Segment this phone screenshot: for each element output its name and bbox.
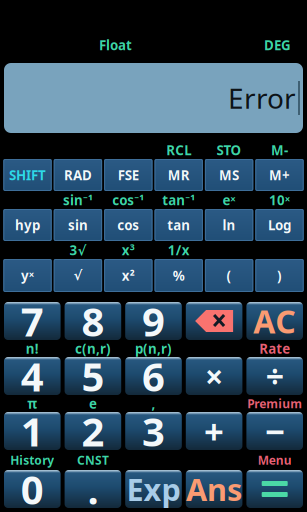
button[interactable]: sin — [54, 209, 102, 241]
button[interactable]: M+ — [255, 159, 304, 191]
staticText: 1 — [21, 404, 44, 457]
staticText: hyp — [15, 216, 40, 234]
staticText: − — [265, 408, 285, 454]
staticText: 5 — [81, 349, 104, 402]
staticText: 1/x — [168, 241, 190, 259]
button[interactable]: % — [154, 259, 203, 292]
staticText: Ans — [186, 469, 242, 509]
button[interactable]: Log — [255, 209, 304, 241]
staticText: tan⁻¹ — [162, 191, 195, 209]
button[interactable]: tan — [154, 209, 203, 241]
staticText: History — [10, 452, 54, 468]
staticText: % — [173, 267, 185, 284]
staticText: x² — [122, 267, 135, 284]
staticText: 0 — [21, 462, 44, 512]
staticText: Error — [228, 79, 296, 117]
staticText: CNST — [77, 452, 109, 468]
staticText: RCL — [166, 141, 191, 159]
staticText: MS — [219, 166, 239, 184]
button[interactable]: cos — [104, 209, 152, 241]
button[interactable]: ) — [255, 259, 304, 292]
button[interactable]: SHIFT — [3, 159, 52, 191]
button[interactable]: 2 — [65, 412, 121, 450]
button[interactable]: 1 — [4, 412, 61, 450]
staticText: Premium — [247, 395, 302, 411]
staticText: p(n,r) — [135, 340, 172, 357]
staticText: x³ — [122, 241, 135, 259]
staticText: FSE — [118, 166, 139, 184]
staticText: 2 — [81, 404, 104, 457]
staticText: , — [151, 395, 155, 412]
button[interactable]: √ — [54, 259, 102, 292]
staticText: cos — [117, 216, 139, 234]
staticText: 4 — [21, 349, 44, 402]
staticText: 3 — [142, 404, 165, 457]
staticText: cos⁻¹ — [112, 191, 144, 209]
staticText: Menu — [258, 452, 292, 468]
staticText: ( — [227, 267, 232, 284]
staticText: . — [87, 462, 98, 512]
button[interactable]: RAD — [54, 159, 102, 191]
staticText: RAD — [64, 166, 92, 184]
staticText: ÷ — [266, 355, 284, 397]
button[interactable]: 9 — [125, 302, 182, 340]
button[interactable]: ( — [205, 259, 253, 292]
staticText: 7 — [21, 294, 44, 347]
button[interactable]: Backspace — [186, 302, 242, 340]
staticText: Rate — [259, 340, 290, 357]
button[interactable]: 8 — [65, 302, 121, 340]
staticText: DEG — [264, 36, 291, 54]
button[interactable]: ÷ — [246, 357, 303, 395]
staticText: M- — [271, 141, 288, 159]
button[interactable]: hyp — [3, 209, 52, 241]
staticText: AC — [253, 300, 296, 342]
button[interactable]: − — [246, 412, 303, 450]
staticText: M+ — [269, 166, 290, 184]
button[interactable]: x² — [104, 259, 152, 292]
staticText: + — [204, 408, 224, 454]
button[interactable]: ln — [205, 209, 253, 241]
staticText: ) — [277, 267, 282, 284]
staticText: Exp — [126, 469, 180, 509]
button[interactable]: + — [186, 412, 242, 450]
staticText: yˣ — [21, 267, 34, 284]
button[interactable]: yˣ — [3, 259, 52, 292]
button[interactable]: Ans — [186, 470, 242, 508]
button[interactable]: Exp — [125, 470, 182, 508]
button[interactable]: Equals — [246, 470, 303, 508]
staticText: 8 — [81, 294, 104, 347]
button[interactable]: 4 — [4, 357, 61, 395]
staticText: sin⁻¹ — [63, 191, 93, 209]
staticText: tan — [167, 216, 190, 234]
button[interactable]: × — [186, 357, 242, 395]
staticText: 3√ — [69, 241, 86, 259]
staticText: SHIFT — [9, 166, 46, 184]
staticText: × — [205, 355, 223, 397]
staticText: c(n,r) — [75, 340, 111, 357]
staticText: ln — [223, 216, 236, 234]
staticText: STO — [217, 141, 242, 159]
button[interactable]: . — [65, 470, 121, 508]
button[interactable]: 5 — [65, 357, 121, 395]
staticText: sin — [68, 216, 88, 234]
button[interactable]: 0 — [4, 470, 61, 508]
button[interactable]: AC — [246, 302, 303, 340]
staticText: π — [27, 395, 37, 412]
staticText: MR — [168, 166, 190, 184]
button[interactable]: 7 — [4, 302, 61, 340]
button[interactable]: 6 — [125, 357, 182, 395]
staticText: n! — [26, 340, 39, 357]
button[interactable]: FSE — [104, 159, 152, 191]
button[interactable]: MS — [205, 159, 253, 191]
button[interactable]: MR — [154, 159, 203, 191]
button[interactable]: 3 — [125, 412, 182, 450]
staticText: 10ˣ — [269, 191, 290, 209]
